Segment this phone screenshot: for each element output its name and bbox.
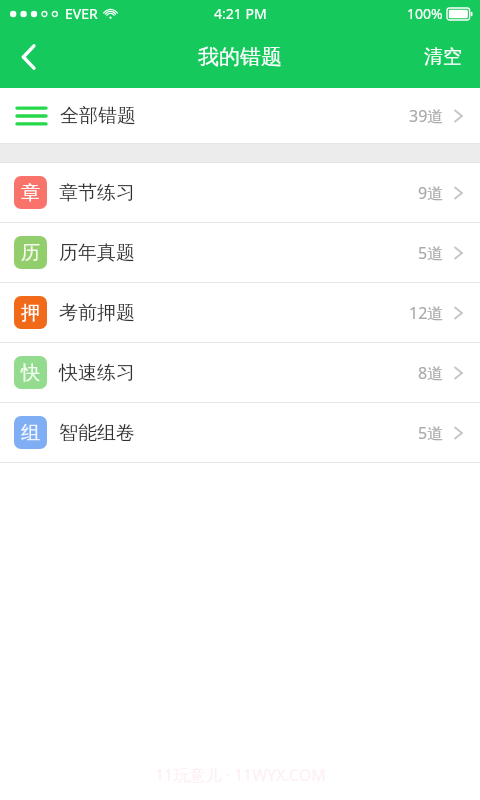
staticText: 全部错题 bbox=[60, 104, 136, 128]
staticText: 章节练习 bbox=[59, 181, 135, 205]
staticText: 39道 bbox=[409, 105, 444, 127]
button[interactable]: 快 bbox=[0, 343, 480, 402]
button[interactable]: 组 bbox=[0, 403, 480, 462]
button[interactable]: 全部错题 bbox=[0, 88, 480, 143]
button[interactable]: 押 bbox=[0, 283, 480, 342]
staticText: 4:21 PM bbox=[214, 4, 267, 23]
button[interactable]: Back bbox=[0, 26, 56, 88]
staticText: 我的错题 bbox=[198, 44, 282, 70]
staticText: 组 bbox=[21, 421, 40, 445]
button[interactable]: 历 bbox=[0, 223, 480, 282]
staticText: 5道 bbox=[418, 422, 444, 444]
staticText: 8道 bbox=[418, 362, 444, 384]
staticText: EVER bbox=[65, 4, 98, 23]
staticText: 快 bbox=[21, 361, 40, 385]
staticText: 9道 bbox=[418, 182, 444, 204]
staticText: 11玩意儿 · 11WYX.COM bbox=[155, 764, 326, 786]
staticText: 考前押题 bbox=[59, 301, 135, 325]
staticText: 智能组卷 bbox=[59, 421, 135, 445]
staticText: 清空 bbox=[424, 45, 462, 69]
button[interactable]: 章 bbox=[0, 163, 480, 222]
button[interactable]: 清空 bbox=[406, 26, 480, 88]
staticText: 章 bbox=[21, 181, 40, 205]
staticText: 12道 bbox=[409, 302, 444, 324]
staticText: 历 bbox=[21, 241, 40, 265]
staticText: 押 bbox=[21, 301, 40, 325]
staticText: 快速练习 bbox=[59, 361, 135, 385]
staticText: 100% bbox=[407, 4, 443, 23]
staticText: 历年真题 bbox=[59, 241, 135, 265]
staticText: 5道 bbox=[418, 242, 444, 264]
